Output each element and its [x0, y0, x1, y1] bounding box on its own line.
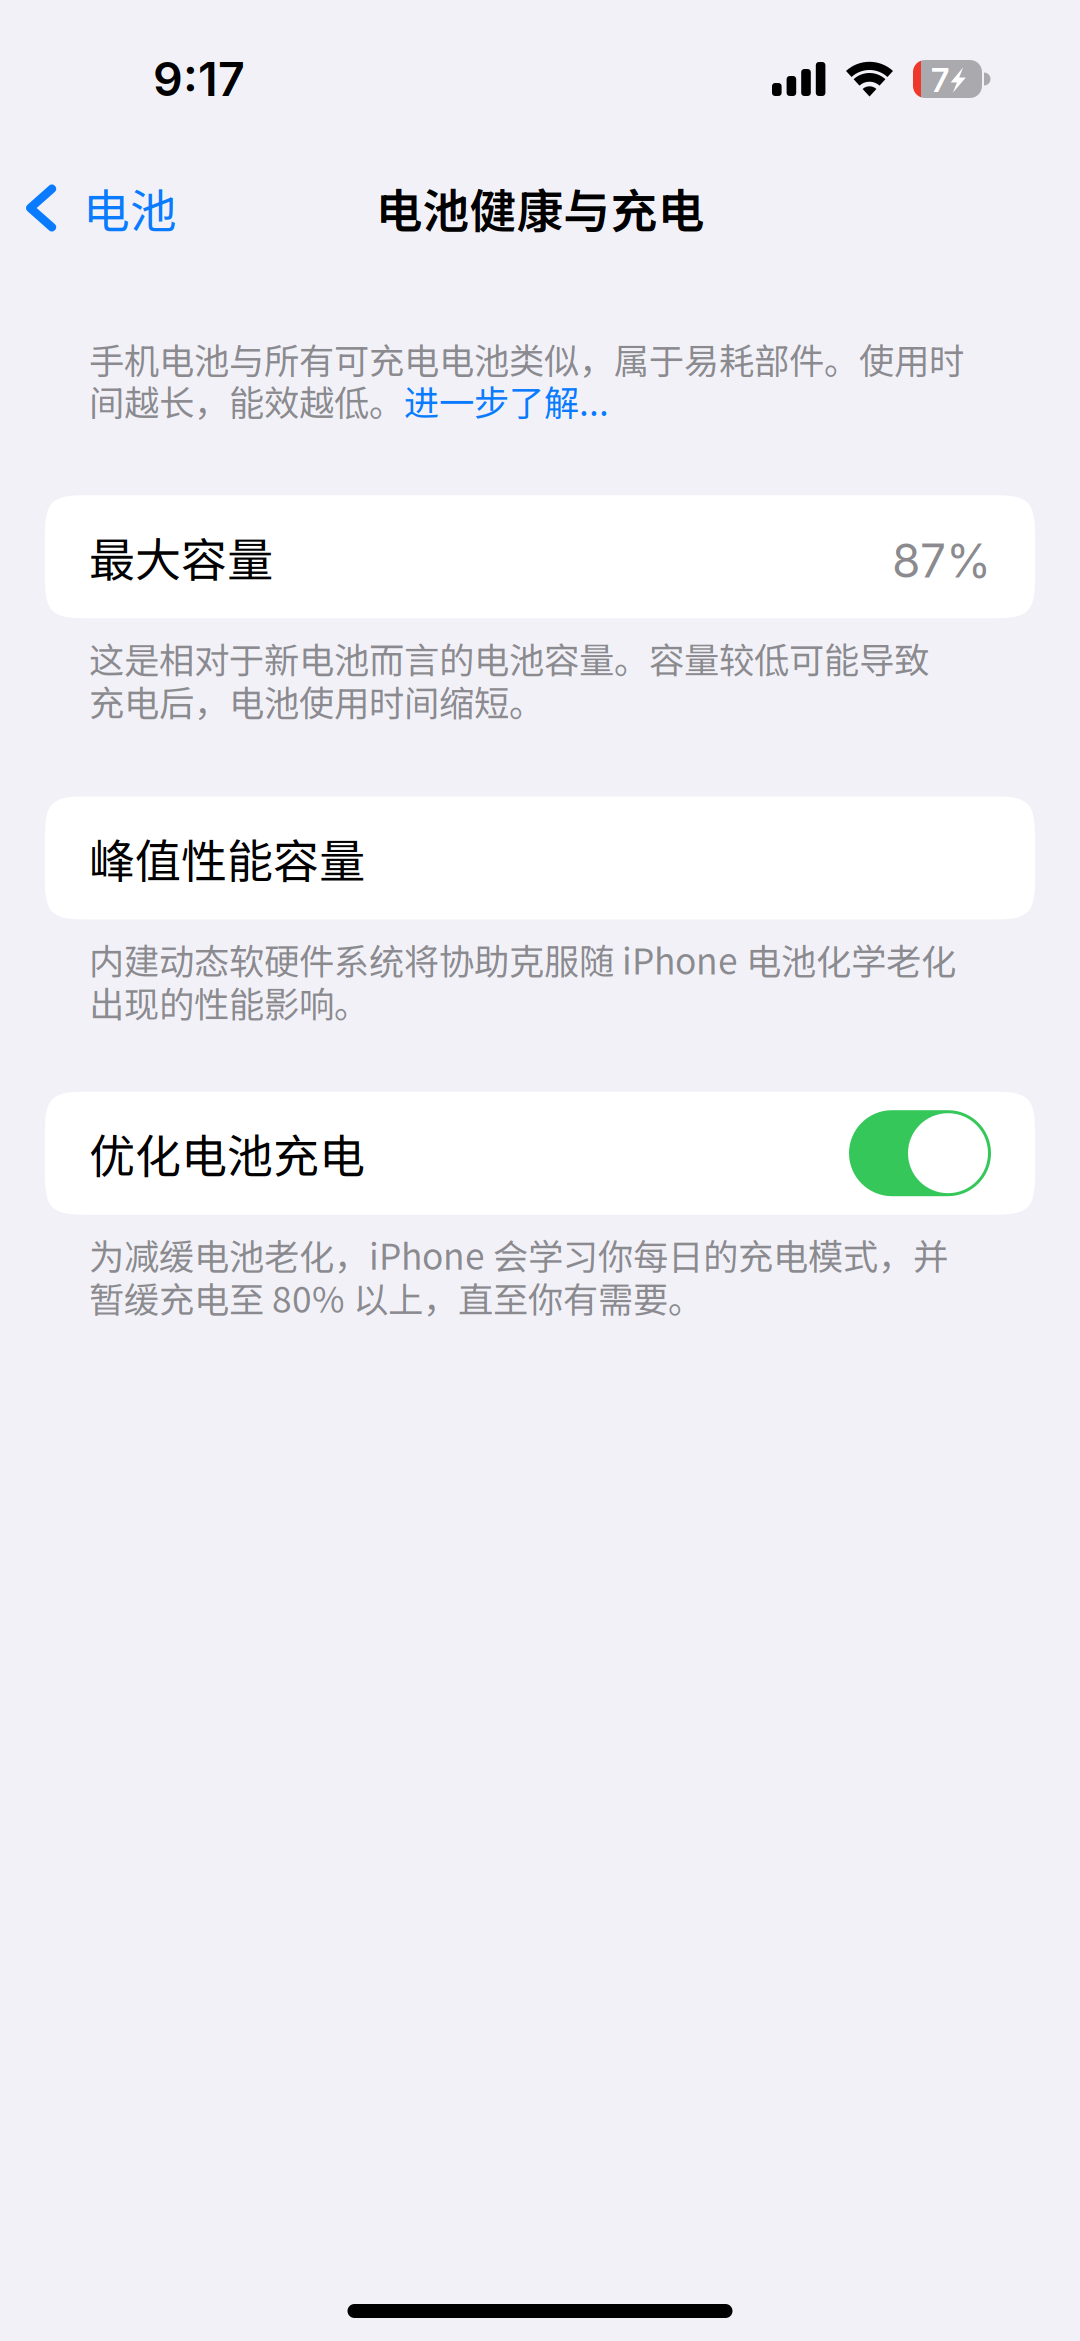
staticText: 为减缓电池老化，iPhone 会学习你每日的充电模式，并暂缓充电至 80% 以上… — [89, 1229, 948, 1323]
button[interactable]: 最大容量 — [0, 495, 1080, 618]
button[interactable]: 峰值性能容量 — [0, 796, 1080, 919]
button[interactable]: 优化电池充电 — [0, 1092, 1080, 1215]
staticText: 9:17 — [153, 51, 245, 107]
staticText: 电池 — [83, 174, 177, 242]
staticText: 87% — [892, 533, 991, 589]
staticText: 最大容量 — [89, 523, 273, 590]
staticText: 电池健康与充电 — [375, 174, 704, 242]
staticText: 进一步了解... — [404, 375, 609, 426]
staticText: 间越长，能效越低。 — [89, 375, 404, 426]
button[interactable]: 进一步了解... — [404, 375, 609, 426]
staticText: 这是相对于新电池而言的电池容量。容量较低可能导致充电后，电池使用时间缩短。 — [89, 632, 929, 726]
staticText: 峰值性能容量 — [89, 825, 365, 891]
staticText: 内建动态软硬件系统将协助克服随 iPhone 电池化学老化出现的性能影响。 — [89, 933, 956, 1028]
staticText: 7 — [931, 60, 949, 100]
button[interactable]: 电池 — [0, 160, 199, 256]
staticText: 手机电池与所有可充电电池类似，属于易耗部件。使用时 — [89, 333, 964, 384]
staticText: 优化电池充电 — [89, 1120, 365, 1186]
